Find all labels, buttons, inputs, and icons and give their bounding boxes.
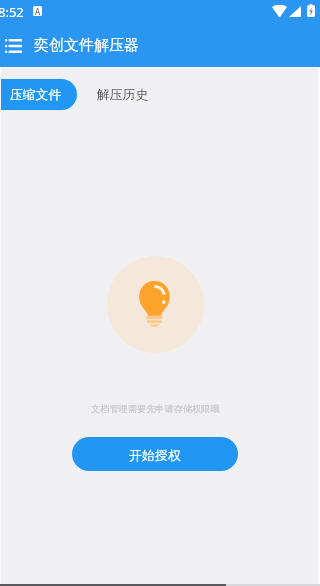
- button[interactable]: Menu: [0, 30, 26, 61]
- staticText: 文档管理需要先申请存储权限哦: [91, 403, 220, 415]
- staticText: A: [35, 6, 41, 16]
- button[interactable]: 开始授权: [72, 437, 238, 471]
- button[interactable]: 压缩文件: [0, 79, 77, 110]
- staticText: 压缩文件: [10, 87, 62, 103]
- button[interactable]: 解压历史: [90, 79, 156, 110]
- staticText: 奕创文件解压器: [34, 36, 139, 55]
- staticText: 8:52: [0, 3, 24, 21]
- staticText: 开始授权: [129, 447, 181, 463]
- staticText: 解压历史: [97, 87, 149, 103]
